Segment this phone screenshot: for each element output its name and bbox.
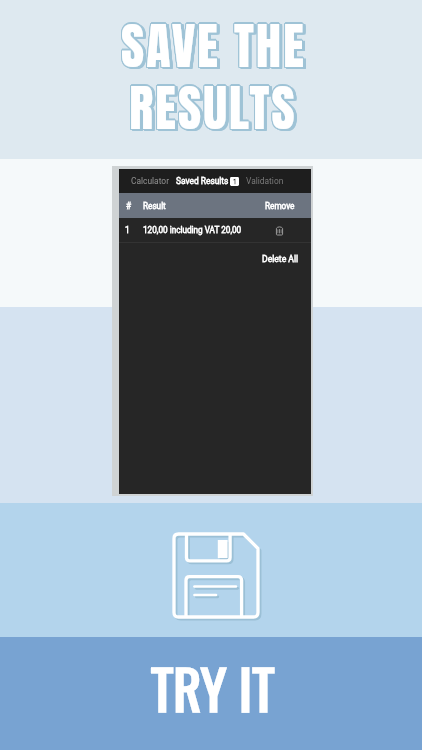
staticText: RESULTS [128,69,296,144]
staticText: RESULTS [132,70,300,145]
staticText: Remove [265,201,295,211]
staticText: RESULTS [131,72,299,147]
button[interactable]: Delete [272,223,287,238]
staticText: 1 [125,225,130,235]
staticText: Result [143,201,166,211]
staticText: Calculator [131,176,169,186]
staticText: RESULTS [130,72,298,147]
button[interactable]: Saved Results [173,169,242,193]
button[interactable]: Validation [243,169,287,193]
staticText: SAVE THE [121,8,306,83]
staticText: SAVE THE [121,6,306,81]
staticText: SAVE THE [120,8,305,83]
staticText: RESULTS [128,70,296,145]
staticText: SAVE THE [120,9,305,84]
staticText: Saved Results [176,176,229,186]
staticText: RESULTS [132,72,300,147]
staticText: SAVE THE [122,8,307,83]
staticText: 120,00 including VAT 20,00 [143,225,242,235]
button[interactable]: Calculator [128,169,172,193]
button[interactable]: TRY IT [0,637,422,750]
staticText: TRY IT [151,648,275,728]
staticText: RESULTS [130,70,298,145]
staticText: 1 [233,178,237,186]
staticText: RESULTS [132,71,300,146]
staticText: SAVE THE [122,10,307,85]
staticText: SAVE THE [124,10,309,85]
staticText: SAVE THE [121,9,306,84]
staticText: RESULTS [129,71,297,146]
staticText: Validation [246,176,284,186]
staticText: SAVE THE [122,9,307,84]
staticText: Delete All [262,254,299,264]
staticText: RESULTS [128,71,296,146]
staticText: SAVE THE [124,9,309,84]
button[interactable]: 1 [119,218,311,242]
staticText: RESULTS [130,69,298,144]
staticText: SAVE THE [122,7,307,82]
staticText: SAVE THE [124,8,309,83]
staticText: SAVE THE [120,7,305,82]
staticText: SAVE THE [123,10,308,85]
staticText: RESULTS [130,71,298,146]
staticText: # [126,201,132,211]
staticText: RESULTS [129,70,297,145]
staticText: RESULTS [129,68,297,143]
button[interactable]: Delete All [250,248,311,270]
